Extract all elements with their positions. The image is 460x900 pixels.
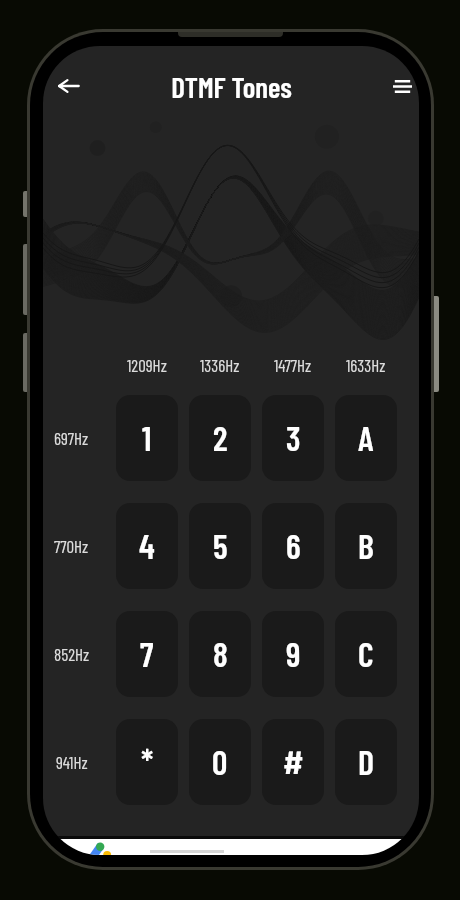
button[interactable]: * bbox=[116, 719, 178, 805]
staticText: 1477Hz bbox=[274, 355, 312, 375]
staticText: 770Hz bbox=[54, 536, 89, 556]
button[interactable]: 1 bbox=[116, 395, 178, 481]
button[interactable]: 3 bbox=[262, 395, 324, 481]
staticText: 3 bbox=[286, 417, 301, 458]
staticText: A bbox=[358, 417, 374, 458]
staticText: C bbox=[358, 633, 374, 674]
button[interactable]: D bbox=[335, 719, 397, 805]
button[interactable]: 6 bbox=[262, 503, 324, 589]
staticText: 852Hz bbox=[54, 644, 90, 664]
staticText: B bbox=[358, 525, 374, 566]
staticText: 697Hz bbox=[54, 428, 89, 448]
staticText: 9 bbox=[286, 633, 301, 674]
button[interactable]: 9 bbox=[262, 611, 324, 697]
button[interactable]: 4 bbox=[116, 503, 178, 589]
staticText: 5 bbox=[213, 525, 228, 566]
staticText: 0 bbox=[212, 741, 228, 782]
staticText: 1 bbox=[142, 417, 152, 458]
button[interactable]: # bbox=[262, 719, 324, 805]
staticText: 7 bbox=[140, 633, 154, 674]
button[interactable]: Back bbox=[46, 62, 91, 110]
button[interactable]: C bbox=[335, 611, 397, 697]
button[interactable]: B bbox=[335, 503, 397, 589]
button[interactable]: A bbox=[335, 395, 397, 481]
staticText: 2 bbox=[213, 417, 228, 458]
staticText: D bbox=[358, 741, 375, 782]
staticText: 1336Hz bbox=[200, 355, 240, 375]
button[interactable]: 0 bbox=[189, 719, 251, 805]
button[interactable]: 2 bbox=[189, 395, 251, 481]
button[interactable]: Menu bbox=[380, 64, 419, 108]
button[interactable]: 8 bbox=[189, 611, 251, 697]
staticText: 1633Hz bbox=[346, 355, 386, 375]
staticText: * bbox=[141, 741, 154, 782]
staticText: # bbox=[283, 741, 304, 782]
staticText: 1209Hz bbox=[127, 355, 167, 375]
staticText: 4 bbox=[139, 525, 155, 566]
staticText: 941Hz bbox=[56, 752, 88, 772]
button[interactable]: 7 bbox=[116, 611, 178, 697]
staticText: 8 bbox=[213, 633, 228, 674]
staticText: 6 bbox=[286, 525, 301, 566]
staticText: DTMF Tones bbox=[171, 69, 292, 104]
button[interactable]: 5 bbox=[189, 503, 251, 589]
